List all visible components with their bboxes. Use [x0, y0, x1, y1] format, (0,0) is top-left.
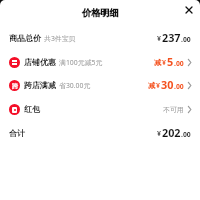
staticText: 商品总价: [9, 33, 41, 43]
staticText: .00: [174, 59, 184, 68]
staticText: ¥: [157, 34, 162, 44]
staticText: 5: [167, 54, 174, 69]
staticText: 减: [154, 58, 162, 67]
button[interactable]: 跨: [9, 73, 191, 97]
staticText: ¥: [156, 81, 161, 91]
staticText: 满100元减5元: [59, 58, 103, 67]
button[interactable]: 店铺优惠: [9, 50, 191, 74]
staticText: ¥: [162, 58, 167, 68]
staticText: ¥: [157, 129, 162, 139]
staticText: 红包: [24, 104, 40, 114]
staticText: 202: [162, 125, 181, 140]
staticText: .00: [181, 130, 191, 139]
staticText: 减: [148, 81, 156, 90]
button[interactable]: 红包: [9, 97, 191, 121]
staticText: 合计: [9, 128, 25, 138]
staticText: 跨: [12, 82, 18, 90]
staticText: 店铺优惠: [24, 57, 56, 67]
staticText: 共3件宝贝: [44, 34, 76, 43]
staticText: .00: [181, 35, 191, 44]
staticText: 30: [161, 77, 174, 92]
staticText: 不可用: [163, 105, 184, 114]
staticText: 省30.00元: [59, 81, 91, 90]
staticText: .00: [174, 82, 184, 91]
staticText: 237: [162, 30, 181, 45]
button[interactable]: Close: [181, 2, 197, 18]
staticText: 跨店满减: [24, 80, 56, 90]
staticText: 价格明细: [82, 7, 119, 19]
